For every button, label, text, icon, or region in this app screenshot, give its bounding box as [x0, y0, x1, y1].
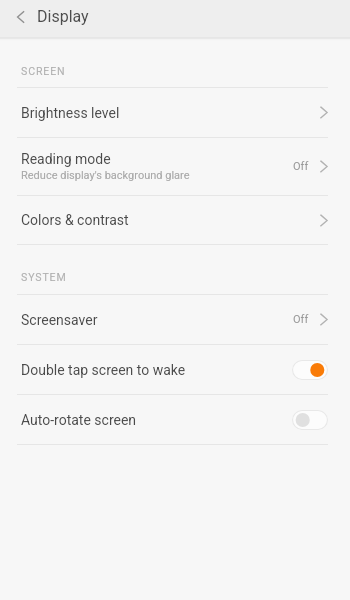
- staticText: Display: [37, 7, 89, 26]
- staticText: Double tap screen to wake: [21, 362, 186, 378]
- staticText: SCREEN: [21, 65, 66, 77]
- staticText: Colors & contrast: [21, 212, 129, 228]
- button[interactable]: Reading mode: [0, 138, 350, 195]
- other: On: [292, 360, 328, 380]
- staticText: Reduce display's background glare: [21, 169, 190, 182]
- button[interactable]: Auto-rotate screen: [0, 395, 350, 444]
- staticText: Brightness level: [21, 105, 120, 121]
- button[interactable]: Back: [0, 0, 41, 33]
- other: Off: [292, 410, 328, 430]
- button[interactable]: Brightness level: [0, 88, 350, 137]
- staticText: Reading mode: [21, 151, 111, 167]
- staticText: SYSTEM: [21, 271, 67, 283]
- button[interactable]: Double tap screen to wake: [0, 345, 350, 394]
- button[interactable]: Colors & contrast: [0, 196, 350, 244]
- staticText: Auto-rotate screen: [21, 412, 137, 428]
- staticText: Off: [293, 313, 309, 326]
- button[interactable]: Screensaver: [0, 295, 350, 344]
- staticText: Screensaver: [21, 312, 98, 328]
- staticText: Off: [293, 160, 309, 173]
